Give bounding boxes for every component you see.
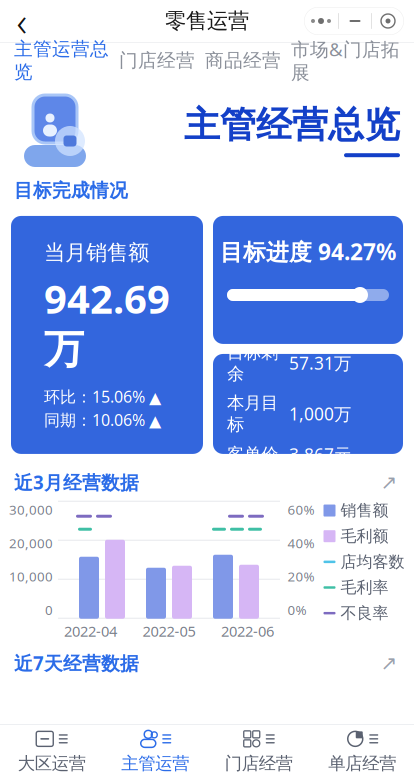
staticText: 门店经营 (225, 753, 293, 774)
staticText: 市场&门店拓展 (291, 37, 400, 84)
staticText: 主管经营总览 (184, 103, 400, 147)
staticText: 目标进度 94.27% (220, 236, 396, 266)
staticText: 目标剩余 (227, 342, 278, 384)
staticText: 门店经营 (119, 49, 195, 72)
button[interactable]: 主管运营 (103, 724, 207, 780)
staticText: 2022-05 (142, 621, 195, 641)
staticText: 商品经营 (205, 49, 281, 72)
staticText: 1,000万 (289, 402, 351, 425)
button[interactable]: 门店经营 (207, 724, 310, 780)
staticText: 主管运营总览 (14, 38, 109, 83)
staticText: 0 (45, 601, 53, 619)
staticText: 30,000 (9, 501, 53, 518)
button[interactable]: 单店经营 (310, 724, 414, 780)
button[interactable]: 查看详情 (378, 652, 400, 674)
staticText: 近3月经营数据 (14, 470, 139, 495)
staticText: 57.31万 (289, 352, 351, 375)
button[interactable]: 更多 (304, 7, 338, 35)
button[interactable]: 市场&门店拓展 (291, 31, 400, 97)
staticText: 单店经营 (328, 753, 396, 774)
staticText: 毛利率 (340, 578, 388, 597)
button[interactable]: 最小化 (339, 7, 371, 35)
button[interactable]: 返回 (0, 1, 44, 41)
staticText: 环比：15.06% ▲ (44, 386, 161, 407)
staticText: 同期：10.06% ▲ (44, 409, 161, 430)
button[interactable]: 主管运营总览 (14, 32, 109, 96)
staticText: 60% (287, 501, 314, 518)
staticText: ↗ (380, 471, 397, 494)
staticText: 不良率 (340, 603, 388, 623)
staticText: 2022-06 (221, 621, 274, 641)
staticText: 2022-04 (64, 621, 117, 641)
staticText: 10,000 (9, 568, 53, 585)
staticText: 客单价 (227, 444, 278, 465)
staticText: 20% (287, 568, 314, 585)
staticText: 3,867元 (289, 443, 351, 466)
button[interactable]: 关闭 (372, 7, 404, 35)
staticText: 目标完成情况 (14, 179, 128, 202)
staticText: 毛利额 (340, 526, 388, 546)
staticText: 0% (287, 601, 306, 619)
staticText: 近7天经营数据 (14, 651, 139, 675)
button[interactable]: 大区运营 (0, 724, 103, 780)
staticText: 零售运营 (165, 8, 249, 34)
staticText: 当月销售额 (44, 239, 149, 266)
staticText: 本月目标 (227, 392, 278, 435)
staticText: ‹ (16, 0, 27, 47)
staticText: 店均客数 (340, 552, 404, 572)
staticText: 20,000 (9, 534, 53, 552)
staticText: 40% (287, 534, 314, 552)
button[interactable]: 门店经营 (119, 43, 195, 85)
staticText: 942.69万 (44, 272, 170, 374)
staticText: 主管运营 (121, 753, 189, 774)
staticText: 大区运营 (18, 753, 86, 774)
button[interactable]: 查看详情 (378, 471, 400, 493)
staticText: 销售额 (340, 501, 388, 520)
staticText: ↗ (380, 652, 397, 674)
button[interactable]: 商品经营 (205, 43, 281, 85)
